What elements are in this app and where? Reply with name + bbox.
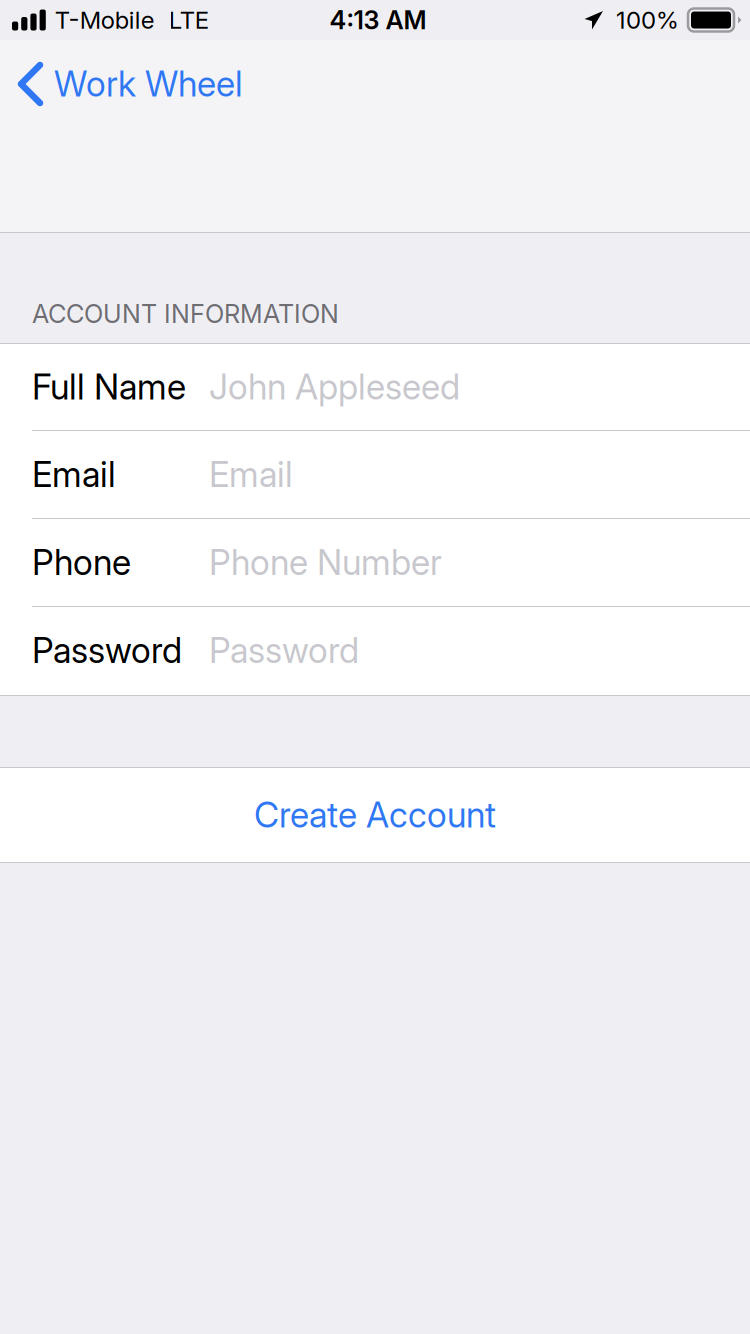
staticText: Create Account bbox=[254, 794, 496, 836]
staticText: Password bbox=[32, 629, 182, 671]
button[interactable]: Full Name bbox=[0, 344, 750, 431]
staticText: Password bbox=[209, 629, 359, 671]
staticText: 4:13 AM bbox=[329, 5, 426, 35]
button[interactable]: Work Wheel bbox=[0, 40, 257, 128]
staticText: T-Mobile bbox=[55, 5, 155, 34]
staticText: Phone Number bbox=[209, 541, 442, 583]
staticText: LTE bbox=[169, 5, 209, 34]
staticText: Email bbox=[32, 453, 116, 495]
staticText: 100% bbox=[616, 5, 679, 34]
button[interactable]: Email bbox=[0, 431, 750, 519]
staticText: John Appleseed bbox=[209, 366, 460, 408]
staticText: Phone bbox=[32, 541, 131, 583]
button[interactable]: Create Account bbox=[0, 768, 750, 862]
staticText: Work Wheel bbox=[54, 63, 243, 105]
button[interactable]: Password bbox=[0, 607, 750, 695]
button[interactable]: Phone bbox=[0, 519, 750, 607]
staticText: Email bbox=[209, 453, 293, 495]
staticText: Full Name bbox=[32, 366, 186, 408]
staticText: ACCOUNT INFORMATION bbox=[32, 298, 339, 329]
